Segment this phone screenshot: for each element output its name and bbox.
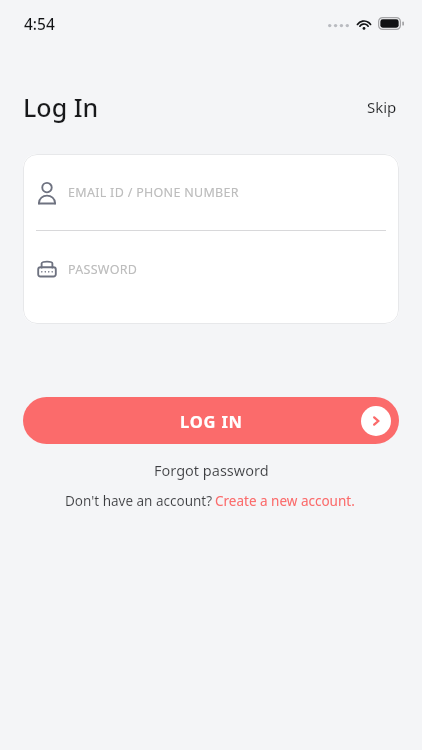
- staticText: EMAIL ID / PHONE NUMBER: [68, 184, 239, 201]
- staticText: Skip: [367, 97, 397, 117]
- staticText: 4:54: [24, 13, 55, 34]
- staticText: Don't have an account?: [65, 492, 213, 510]
- button[interactable]: Create a new account.: [213, 490, 357, 512]
- button[interactable]: LOG IN: [23, 397, 399, 444]
- staticText: PASSWORD: [68, 261, 138, 278]
- staticText: Forgot password: [154, 460, 269, 480]
- button[interactable]: Skip: [365, 93, 399, 121]
- staticText: Log In: [23, 90, 99, 124]
- button[interactable]: EMAIL ID / PHONE NUMBER: [23, 154, 399, 230]
- button[interactable]: Forgot password: [148, 457, 275, 483]
- button[interactable]: PASSWORD: [23, 231, 399, 307]
- staticText: LOG IN: [180, 410, 243, 432]
- staticText: Create a new account.: [215, 492, 355, 510]
